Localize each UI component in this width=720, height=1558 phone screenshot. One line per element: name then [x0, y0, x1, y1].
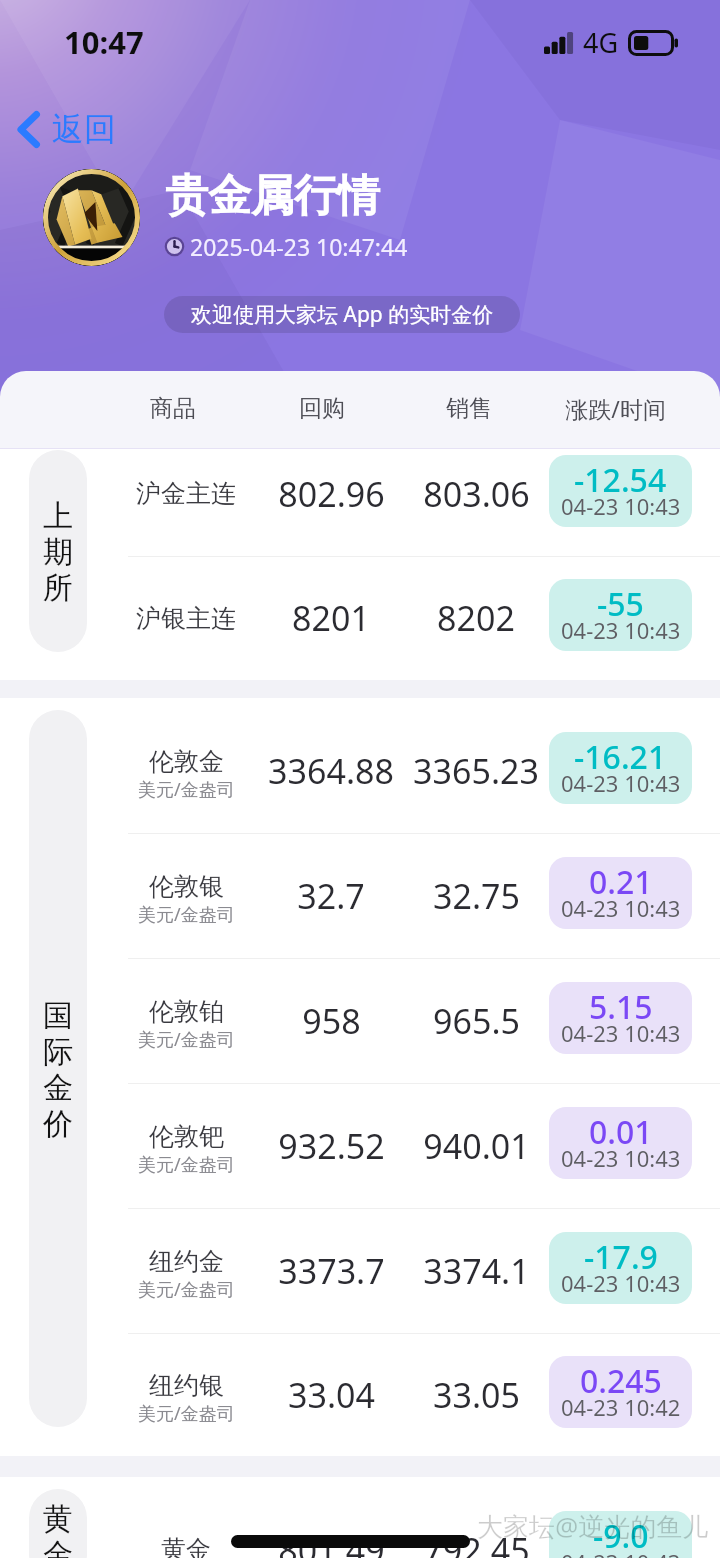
staticText: 黄金	[161, 1534, 211, 1558]
staticText: 04-23 10:42	[561, 1392, 681, 1422]
staticText: 际	[43, 1033, 73, 1069]
button[interactable]: 纽约银	[128, 1333, 720, 1456]
staticText: 返回	[52, 109, 116, 149]
button[interactable]: 沪金主连	[128, 431, 720, 556]
staticText: 10:47	[64, 21, 144, 63]
staticText: 美元/金盎司	[138, 1027, 235, 1052]
button[interactable]: 伦敦铂	[128, 958, 720, 1083]
staticText: 美元/金盎司	[138, 1277, 235, 1302]
staticText: 纽约金	[149, 1246, 224, 1277]
staticText: 04-23 10:43	[561, 491, 681, 521]
staticText: 0.21	[589, 860, 653, 904]
staticText: 0.245	[580, 1359, 662, 1403]
staticText: 伦敦铂	[149, 996, 224, 1027]
staticText: 销售	[446, 394, 492, 423]
staticText: 04-23 10:43	[561, 1547, 681, 1558]
staticText: 伦敦钯	[149, 1121, 224, 1152]
staticText: 3373.7	[278, 1248, 385, 1294]
button[interactable]: -55	[549, 579, 692, 651]
staticText: 美元/金盎司	[138, 902, 235, 927]
staticText: 沪金主连	[136, 478, 236, 509]
staticText: -16.21	[574, 735, 667, 779]
staticText: 801.49	[278, 1527, 385, 1558]
staticText: 3374.1	[423, 1248, 530, 1294]
button[interactable]: 0.01	[549, 1107, 692, 1179]
staticText: 3364.88	[268, 748, 394, 794]
staticText: 932.52	[278, 1123, 385, 1169]
staticText: 国	[43, 997, 73, 1033]
staticText: 803.06	[423, 471, 530, 517]
button[interactable]: 5.15	[549, 982, 692, 1054]
staticText: 958	[302, 998, 361, 1044]
button[interactable]: 销售	[399, 394, 539, 423]
staticText: 金	[43, 1069, 73, 1105]
staticText: 04-23 10:43	[561, 893, 681, 923]
staticText: 美元/金盎司	[138, 777, 235, 802]
staticText: 伦敦金	[149, 746, 224, 777]
staticText: 商品	[150, 394, 196, 423]
staticText: 沪银主连	[136, 603, 236, 634]
staticText: 贵金属行情	[165, 169, 380, 223]
button[interactable]: 黄金	[128, 1487, 720, 1558]
staticText: 5.15	[589, 985, 653, 1029]
staticText: 所	[43, 569, 73, 605]
staticText: 32.7	[297, 873, 365, 919]
staticText: 940.01	[423, 1123, 530, 1169]
button[interactable]: 商品	[103, 394, 243, 423]
staticText: 涨跌/时间	[565, 393, 666, 424]
staticText: -12.54	[574, 458, 667, 502]
staticText: 上	[43, 497, 73, 533]
button[interactable]: 伦敦银	[128, 833, 720, 958]
staticText: 802.96	[278, 471, 385, 517]
button[interactable]: -16.21	[549, 732, 692, 804]
staticText: 欢迎使用大家坛 App 的实时金价	[191, 300, 494, 329]
staticText: 纽约银	[149, 1370, 224, 1401]
staticText: 美元/金盎司	[138, 1401, 235, 1426]
button[interactable]: 黄	[29, 1489, 87, 1558]
staticText: 04-23 10:43	[561, 615, 681, 645]
button[interactable]: 0.21	[549, 857, 692, 929]
staticText: 04-23 10:43	[561, 768, 681, 798]
button[interactable]: 0.245	[549, 1356, 692, 1428]
button[interactable]: -17.9	[549, 1232, 692, 1304]
button[interactable]: -9.0	[549, 1511, 692, 1558]
button[interactable]: 纽约金	[128, 1208, 720, 1333]
button[interactable]: 沪银主连	[128, 556, 720, 680]
staticText: 0.01	[589, 1110, 653, 1154]
staticText: 3365.23	[413, 748, 539, 794]
staticText: 8202	[437, 595, 515, 641]
staticText: 792.45	[423, 1527, 530, 1558]
button[interactable]: 头像	[43, 169, 140, 266]
staticText: 33.04	[288, 1372, 375, 1418]
staticText: 回购	[299, 394, 345, 423]
button[interactable]: -12.54	[549, 455, 692, 527]
staticText: 04-23 10:43	[561, 1143, 681, 1173]
button[interactable]: 涨跌/时间	[545, 393, 685, 424]
staticText: 美元/金盎司	[138, 1152, 235, 1177]
button[interactable]: 伦敦金	[128, 708, 720, 833]
staticText: 金	[43, 1536, 73, 1558]
staticText: -55	[597, 582, 644, 626]
button[interactable]: 伦敦钯	[128, 1083, 720, 1208]
staticText: 32.75	[433, 873, 520, 919]
staticText: 伦敦银	[149, 871, 224, 902]
staticText: -17.9	[584, 1235, 658, 1279]
staticText: 04-23 10:43	[561, 1268, 681, 1298]
button[interactable]: 返回	[8, 100, 126, 158]
staticText: 04-23 10:43	[561, 1018, 681, 1048]
staticText: 2025-04-23 10:47:44	[190, 231, 408, 262]
staticText: 大家坛@逆光的鱼儿	[477, 1508, 709, 1544]
staticText: 965.5	[433, 998, 520, 1044]
staticText: 4G	[583, 24, 619, 61]
staticText: 黄	[43, 1500, 73, 1536]
staticText: -9.0	[593, 1514, 649, 1558]
button[interactable]: 国	[29, 710, 87, 1427]
staticText: 33.05	[433, 1372, 520, 1418]
button[interactable]: 回购	[252, 394, 392, 423]
staticText: 期	[43, 533, 73, 569]
staticText: 价	[43, 1105, 73, 1141]
button[interactable]: 上	[29, 450, 87, 652]
button[interactable]: 欢迎使用大家坛 App 的实时金价	[164, 296, 520, 333]
staticText: 8201	[292, 595, 370, 641]
